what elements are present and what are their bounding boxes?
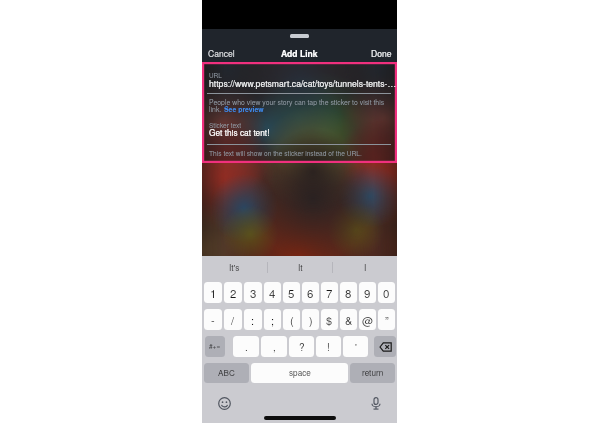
button[interactable]: See preview [224,104,264,114]
staticText: , [273,340,276,354]
staticText: See preview [224,104,264,114]
button[interactable]: & [340,309,357,330]
staticText: 7 [326,285,333,301]
button[interactable]: It's [202,256,267,278]
button[interactable]: 2 [224,282,242,303]
button[interactable]: Dictation [368,395,384,411]
staticText: 4 [269,285,276,301]
staticText: 2 [230,285,237,301]
staticText: Add Link [281,47,318,59]
button[interactable]: . [233,336,259,357]
button[interactable]: Backspace [374,336,396,357]
staticText: 6 [307,285,314,301]
staticText: https://www.petsmart.ca/cat/toys/tunnels… [209,77,397,89]
button[interactable]: It [268,256,332,278]
button[interactable]: Emoji keyboard [216,395,232,411]
staticText: This text will show on the sticker inste… [209,148,362,158]
staticText: $ [326,312,333,328]
button[interactable]: / [224,309,242,330]
staticText: ABC [218,367,235,379]
button[interactable]: - [204,309,222,330]
button[interactable]: ) [302,309,319,330]
staticText: Sticker text [209,120,241,129]
staticText: ? [299,340,305,354]
button[interactable]: @ [359,309,376,330]
staticText: 0 [383,285,390,301]
button[interactable]: : [244,309,262,330]
button[interactable]: , [261,336,287,357]
staticText: 8 [345,285,352,301]
button[interactable]: I [333,256,397,278]
staticText: ) [309,312,313,328]
staticText: . [245,340,248,354]
button[interactable]: 9 [359,282,376,303]
button[interactable]: Cancel [205,44,238,62]
button[interactable]: ! [316,336,341,357]
staticText: ; [271,312,275,328]
staticText: People who view your story can tap the s… [209,97,385,107]
staticText: ' [355,340,357,354]
staticText: I [364,261,367,273]
staticText: URL [209,71,222,80]
staticText: #+= [209,342,221,351]
button[interactable]: ” [378,309,395,330]
button[interactable]: 0 [378,282,395,303]
button[interactable]: $ [321,309,338,330]
button[interactable]: 6 [302,282,319,303]
staticText: link. [209,104,224,114]
button[interactable]: ? [289,336,314,357]
button[interactable]: 3 [244,282,262,303]
button[interactable]: 1 [204,282,222,303]
button[interactable]: ABC [204,363,249,383]
staticText: 3 [250,285,257,301]
button[interactable]: 5 [283,282,300,303]
button[interactable]: 4 [264,282,281,303]
button[interactable]: return [350,363,395,383]
button[interactable]: ( [283,309,300,330]
button[interactable]: 8 [340,282,357,303]
staticText: ” [385,312,389,328]
button[interactable]: Done [368,44,395,62]
button[interactable]: #+= [205,336,225,357]
staticText: space [289,367,311,379]
staticText: Done [371,47,392,59]
staticText: 5 [288,285,295,301]
staticText: 9 [364,285,371,301]
staticText: @ [362,312,374,328]
staticText: ( [290,312,294,328]
staticText: Get this cat tent! [209,126,270,138]
staticText: It [298,261,303,273]
staticText: It's [229,261,240,273]
staticText: - [211,312,215,328]
staticText: return [362,367,384,379]
button[interactable]: ' [343,336,368,357]
staticText: Cancel [208,47,235,59]
staticText: & [345,312,353,328]
staticText: : [251,312,255,328]
staticText: 1 [210,285,217,301]
staticText: ! [327,340,330,354]
button[interactable]: space [251,363,348,383]
staticText: / [231,312,235,328]
button[interactable]: 7 [321,282,338,303]
button[interactable]: ; [264,309,281,330]
